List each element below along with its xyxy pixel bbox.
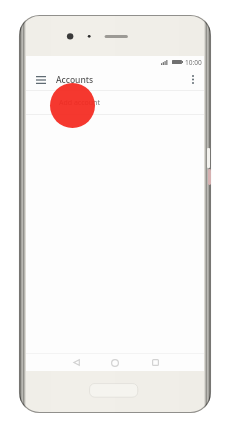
button[interactable]: Open navigation drawer [28,69,53,90]
staticText: Add account [59,98,100,108]
staticText: 10:00 [185,58,202,67]
button[interactable]: More options [184,69,202,90]
button[interactable]: Back [68,354,84,371]
button[interactable]: Add account [26,91,204,114]
staticText: Accounts [56,74,94,86]
button[interactable]: Recent apps [147,354,163,371]
button[interactable]: Home [107,354,123,371]
